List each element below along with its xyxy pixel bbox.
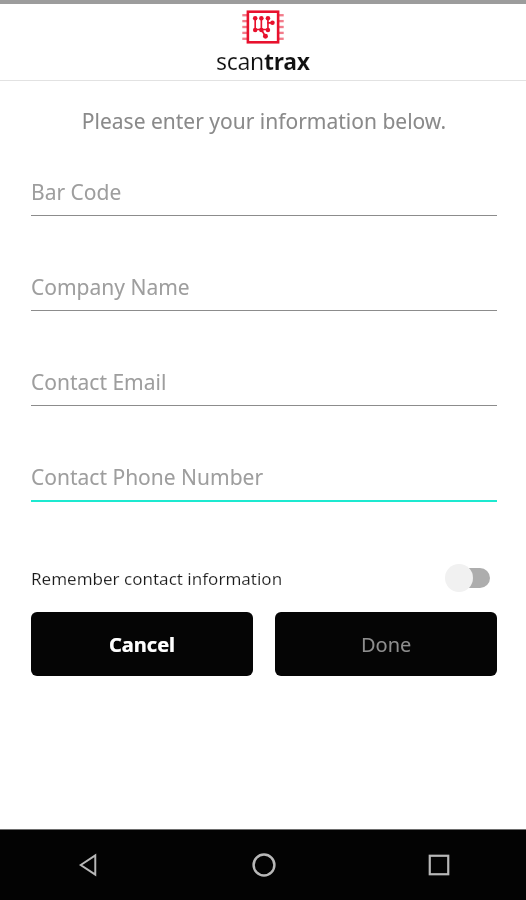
staticText: Bar Code [31, 178, 122, 207]
button[interactable]: Cancel [31, 612, 253, 676]
button[interactable]: Recent apps [351, 830, 526, 900]
staticText: Contact Phone Number [31, 463, 264, 492]
button[interactable]: Back [0, 830, 176, 900]
staticText: scantrax [216, 45, 310, 76]
staticText: Please enter your information below. [31, 107, 497, 136]
staticText: Company Name [31, 273, 190, 302]
button[interactable]: Remember contact information [31, 558, 497, 598]
button[interactable]: Home [176, 830, 351, 900]
staticText: Contact Email [31, 368, 167, 397]
button[interactable]: Done [275, 612, 497, 676]
button[interactable]: Contact Email [31, 368, 497, 406]
staticText: Done [361, 631, 412, 658]
staticText: Cancel [109, 631, 176, 658]
button[interactable]: Bar Code [31, 178, 497, 216]
button[interactable]: Contact Phone Number [31, 463, 497, 502]
button[interactable]: Company Name [31, 273, 497, 311]
staticText: Remember contact information [31, 567, 445, 590]
